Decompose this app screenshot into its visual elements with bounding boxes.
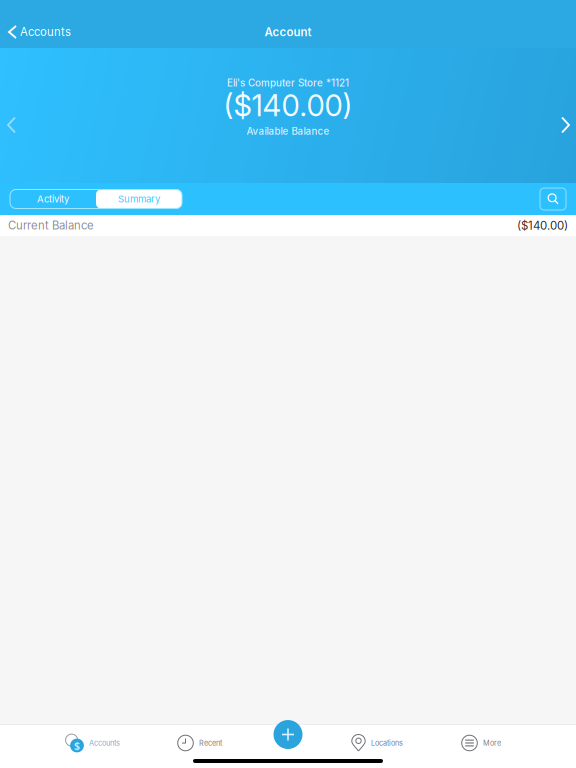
button[interactable]: Recent <box>177 730 351 756</box>
button[interactable]: Previous account <box>0 110 27 140</box>
button[interactable]: Activity <box>10 189 96 208</box>
button[interactable]: Next account <box>550 110 576 140</box>
staticText: Accounts <box>20 25 71 39</box>
staticText: More <box>483 739 501 747</box>
staticText: Accounts <box>89 739 120 747</box>
staticText: ($140.00) <box>517 219 568 232</box>
staticText: Summary <box>118 193 160 205</box>
button[interactable]: Accounts <box>0 16 79 48</box>
staticText: ($140.00) <box>223 88 352 123</box>
staticText: Account <box>264 25 311 39</box>
staticText: Available Balance <box>246 125 329 137</box>
button[interactable]: Locations <box>351 730 461 756</box>
button[interactable]: Add <box>273 720 302 749</box>
button[interactable]: More <box>461 730 501 756</box>
staticText: Locations <box>371 739 403 747</box>
button[interactable]: Summary <box>96 189 182 208</box>
button[interactable]: $ <box>0 730 177 756</box>
staticText: Current Balance <box>8 219 94 232</box>
staticText: Activity <box>37 193 69 205</box>
button[interactable]: Search <box>540 188 566 210</box>
staticText: $ <box>74 738 80 753</box>
staticText: Recent <box>199 739 222 747</box>
staticText: Eli's Computer Store *1121 <box>227 77 349 89</box>
